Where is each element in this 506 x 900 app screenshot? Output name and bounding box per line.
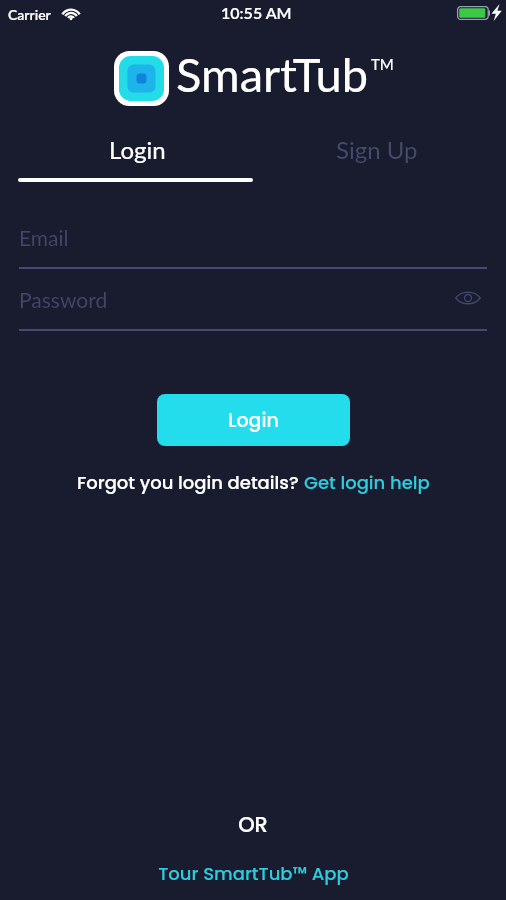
staticText: SmartTub — [176, 46, 369, 102]
button[interactable]: Tour SmartTub™ App — [158, 861, 349, 886]
staticText: Password — [19, 287, 108, 312]
staticText: Carrier — [8, 6, 51, 23]
button[interactable]: Show password — [450, 280, 485, 315]
button[interactable]: Login — [18, 129, 256, 169]
staticText: Get login help — [304, 470, 430, 495]
staticText: 10:55 AM — [221, 3, 292, 22]
staticText: Forgot you login details? — [77, 470, 304, 495]
staticText: Sign Up — [336, 135, 418, 164]
button[interactable]: Get login help — [304, 470, 430, 495]
button[interactable]: Login — [157, 394, 350, 446]
staticText: Tour SmartTub™ App — [158, 861, 349, 886]
staticText: Login — [109, 135, 166, 164]
staticText: Login — [228, 407, 279, 434]
staticText: Email — [19, 225, 69, 250]
staticText: TM — [371, 55, 394, 73]
staticText: OR — [238, 810, 268, 839]
button[interactable]: Sign Up — [258, 129, 496, 169]
